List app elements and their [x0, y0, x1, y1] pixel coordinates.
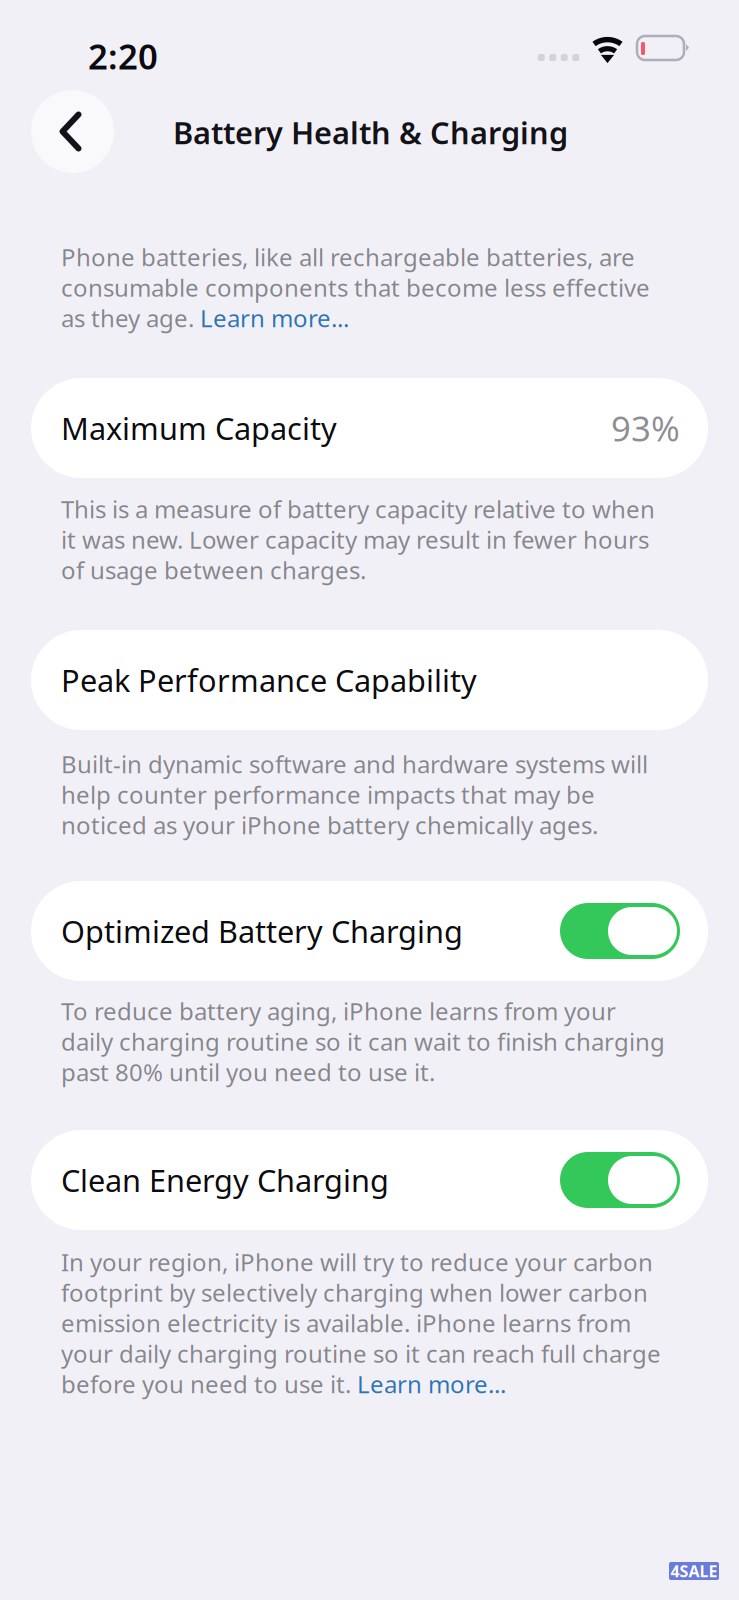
staticText: your daily charging routine so it can re…	[61, 1337, 661, 1369]
staticText: footprint by selectively charging when l…	[61, 1276, 648, 1308]
staticText: emission electricity is available. iPhon…	[61, 1307, 631, 1339]
button[interactable]: Learn more...	[200, 302, 349, 334]
staticText: of usage between charges.	[61, 554, 366, 586]
staticText: Optimized Battery Charging	[61, 911, 463, 951]
button[interactable]: Optimized Battery Charging	[0, 0, 739, 1600]
staticText: Peak Performance Capability	[61, 660, 477, 700]
button[interactable]: Clean Energy Charging	[0, 0, 739, 1600]
button[interactable]: Back	[31, 90, 114, 173]
staticText: Learn more...	[200, 302, 349, 334]
staticText: 4SALE	[670, 1560, 717, 1582]
staticText: Phone batteries, like all rechargeable b…	[61, 241, 635, 273]
staticText: as they age.	[61, 302, 200, 334]
staticText: Learn more...	[357, 1368, 506, 1400]
staticText: it was new. Lower capacity may result in…	[61, 523, 649, 555]
staticText: To reduce battery aging, iPhone learns f…	[61, 995, 616, 1027]
staticText: help counter performance impacts that ma…	[61, 778, 595, 810]
button[interactable]: Learn more...	[357, 1368, 506, 1400]
staticText: 93%	[611, 405, 680, 451]
staticText: daily charging routine so it can wait to…	[61, 1025, 665, 1057]
staticText: before you need to use it.	[61, 1368, 357, 1400]
staticText: Battery Health & Charging	[173, 112, 568, 153]
staticText: noticed as your iPhone battery chemicall…	[61, 809, 598, 841]
staticText: Clean Energy Charging	[61, 1160, 389, 1200]
staticText: consumable components that become less e…	[61, 271, 650, 303]
staticText: In your region, iPhone will try to reduc…	[61, 1246, 653, 1278]
staticText: Built-in dynamic software and hardware s…	[61, 748, 648, 780]
staticText: This is a measure of battery capacity re…	[61, 493, 655, 525]
staticText: Maximum Capacity	[61, 408, 337, 448]
staticText: 2:20	[88, 33, 158, 79]
staticText: past 80% until you need to use it.	[61, 1056, 435, 1088]
button[interactable]: Peak Performance Capability	[0, 0, 739, 1600]
